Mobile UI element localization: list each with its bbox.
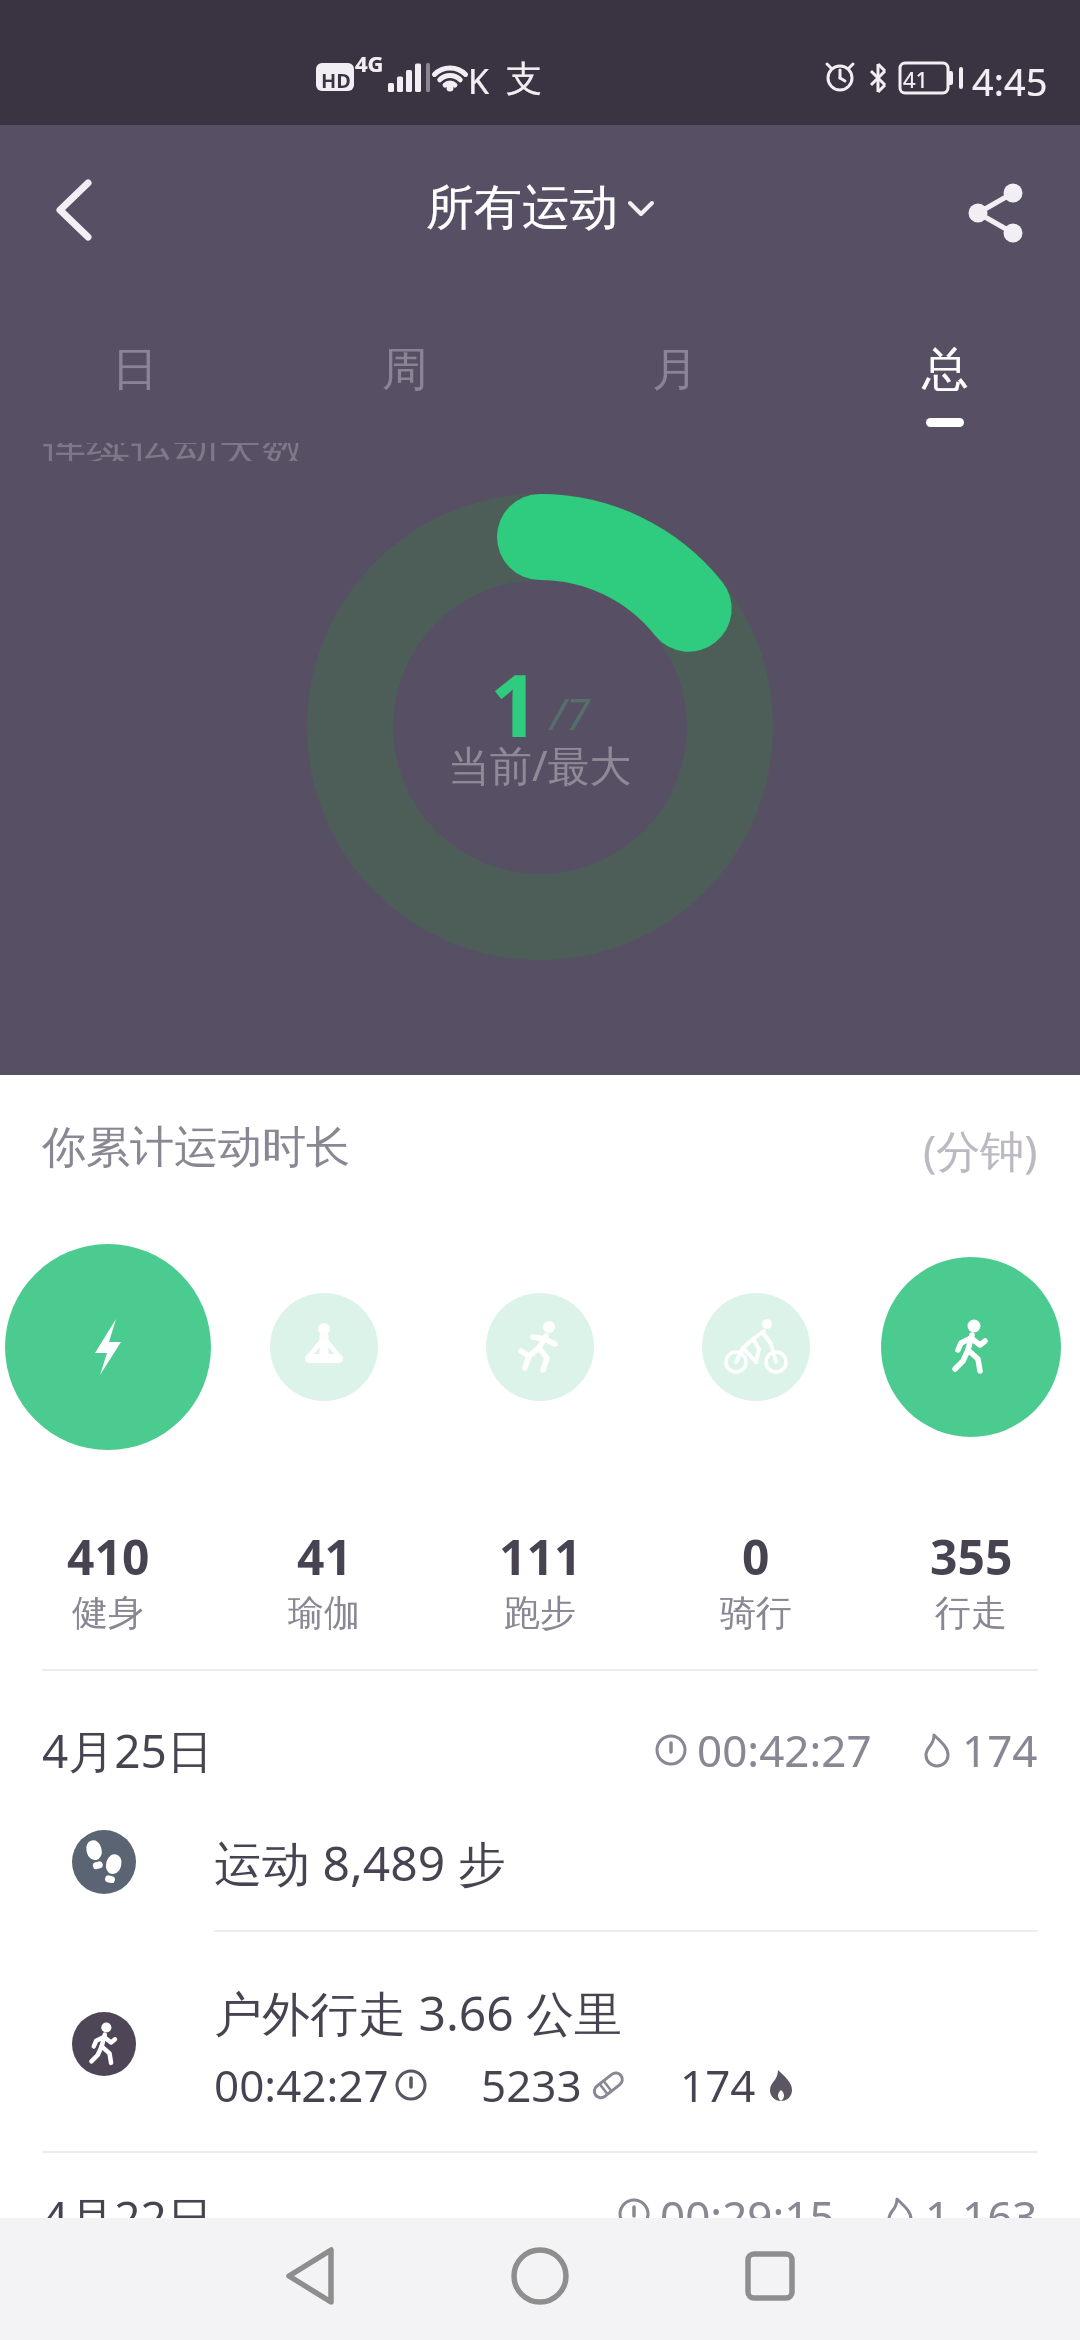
staticText: 41 [903, 64, 929, 94]
button[interactable] [720, 2226, 820, 2326]
button[interactable] [881, 1257, 1061, 1437]
staticText: 户外行走 3.66 公里 [214, 1980, 623, 2046]
button[interactable]: 周 [315, 310, 495, 430]
staticText: 日 [112, 341, 158, 399]
staticText: (分钟) [923, 1120, 1038, 1180]
staticText: 00:42:27 [214, 2055, 389, 2115]
staticText: 410 [67, 1524, 150, 1589]
staticText: 4:45 [972, 55, 1048, 107]
staticText: 0 [742, 1524, 770, 1589]
staticText: 当前/最大 [448, 736, 632, 793]
staticText: 你累计运动时长 [42, 1120, 350, 1175]
button[interactable] [270, 1293, 378, 1401]
staticText: 41 [297, 1524, 352, 1589]
button[interactable]: 月 [585, 310, 765, 430]
staticText: 健身 [72, 1590, 144, 1635]
button[interactable] [490, 2226, 590, 2326]
button[interactable] [702, 1293, 810, 1401]
button[interactable] [5, 1244, 211, 1450]
staticText: 1,163 [925, 2186, 1038, 2242]
staticText: 周 [382, 341, 428, 399]
staticText: 00:42:27 [697, 1720, 872, 1780]
staticText: 4G [355, 48, 384, 78]
staticText: 所有运动 [426, 178, 618, 238]
staticText: 支 [506, 56, 542, 101]
staticText: 4月25日 [42, 1719, 213, 1782]
button[interactable] [955, 172, 1035, 252]
button[interactable]: 所有运动 [380, 170, 700, 246]
staticText: 174 [962, 1720, 1038, 1780]
button[interactable]: 户外行走 3.66 公里 [0, 1932, 1080, 2151]
staticText: 00:29:15 [660, 2186, 835, 2242]
staticText: 连续运动天数 [42, 443, 306, 461]
button[interactable]: 运动 8,489 步 [0, 1795, 1080, 1930]
staticText: 111 [499, 1524, 582, 1589]
staticText: 174 [680, 2055, 756, 2115]
button[interactable] [261, 2226, 361, 2326]
staticText: 月 [652, 341, 698, 399]
button[interactable]: 日 [45, 310, 225, 430]
staticText: /7 [550, 683, 590, 743]
staticText: 运动 8,489 步 [214, 1830, 506, 1896]
button[interactable]: 总 [855, 310, 1035, 430]
staticText: 355 [930, 1524, 1013, 1589]
staticText: K [468, 58, 490, 104]
button[interactable] [30, 165, 114, 249]
staticText: HD [321, 67, 351, 94]
staticText: 1 [490, 645, 540, 755]
staticText: 跑步 [504, 1590, 576, 1635]
staticText: 瑜伽 [288, 1590, 360, 1635]
staticText: 总 [922, 341, 968, 399]
staticText: 行走 [935, 1590, 1007, 1635]
staticText: 5233 [481, 2055, 582, 2115]
button[interactable] [486, 1293, 594, 1401]
staticText: 骑行 [720, 1590, 792, 1635]
staticText: 4月22日 [42, 2186, 213, 2242]
